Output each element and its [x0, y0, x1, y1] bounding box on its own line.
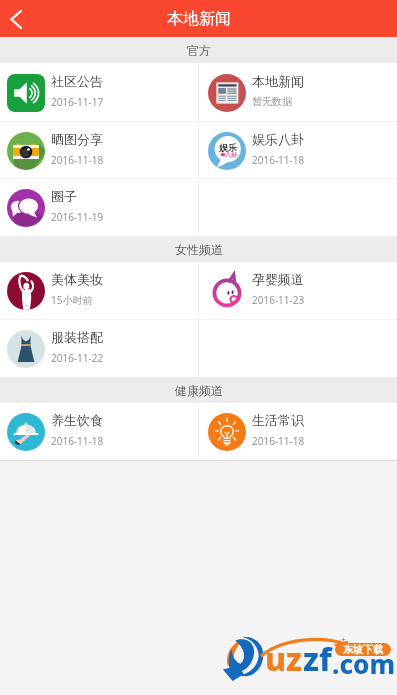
staticText: 娱乐八卦	[252, 131, 304, 147]
staticText: 2016-11-18	[252, 153, 305, 167]
staticText: 娱乐	[219, 142, 237, 153]
staticText: 晒图分享	[51, 131, 103, 147]
staticText: 2016-11-23	[252, 293, 305, 307]
button[interactable]: 本地新闻	[199, 63, 397, 122]
staticText: 服装搭配	[51, 329, 103, 345]
staticText: 孕婴频道	[252, 271, 304, 287]
button[interactable]: 服装搭配	[0, 320, 198, 377]
button[interactable]: 养生饮食	[0, 403, 198, 460]
staticText: 2016-11-22	[51, 351, 104, 365]
staticText: .com	[332, 646, 396, 681]
staticText: 东坡下载	[343, 643, 383, 656]
button[interactable]: 社区公告	[0, 63, 198, 122]
staticText: 2016-11-18	[252, 434, 305, 448]
staticText: 2016-11-17	[51, 95, 104, 109]
button[interactable]: 圈子	[0, 179, 198, 236]
button[interactable]: 美体美妆	[0, 262, 198, 320]
staticText: 本地新闻	[167, 9, 231, 29]
staticText: 2016-11-19	[51, 210, 104, 224]
staticText: zf	[303, 637, 332, 681]
staticText: 健康频道	[175, 383, 223, 398]
button[interactable]: 晒图分享	[0, 122, 198, 179]
staticText: 2016-11-18	[51, 434, 104, 448]
staticText: 暂无数据	[252, 95, 292, 108]
button[interactable]: 娱乐	[199, 122, 397, 179]
staticText: 官方	[187, 43, 211, 58]
staticText: 社区公告	[51, 73, 103, 89]
staticText: 女性频道	[175, 242, 223, 257]
staticText: 圈子	[51, 188, 77, 204]
staticText: uz	[265, 637, 303, 681]
staticText: 15小时前	[51, 293, 93, 307]
staticText: 八卦	[225, 151, 237, 159]
staticText: 养生饮食	[51, 412, 103, 428]
button[interactable]: 孕婴频道	[199, 262, 397, 320]
staticText: 生活常识	[252, 412, 304, 428]
button[interactable]: Back	[0, 0, 37, 37]
staticText: 2016-11-18	[51, 153, 104, 167]
button[interactable]: 生活常识	[199, 403, 397, 460]
staticText: 美体美妆	[51, 271, 103, 287]
staticText: 本地新闻	[252, 73, 304, 89]
